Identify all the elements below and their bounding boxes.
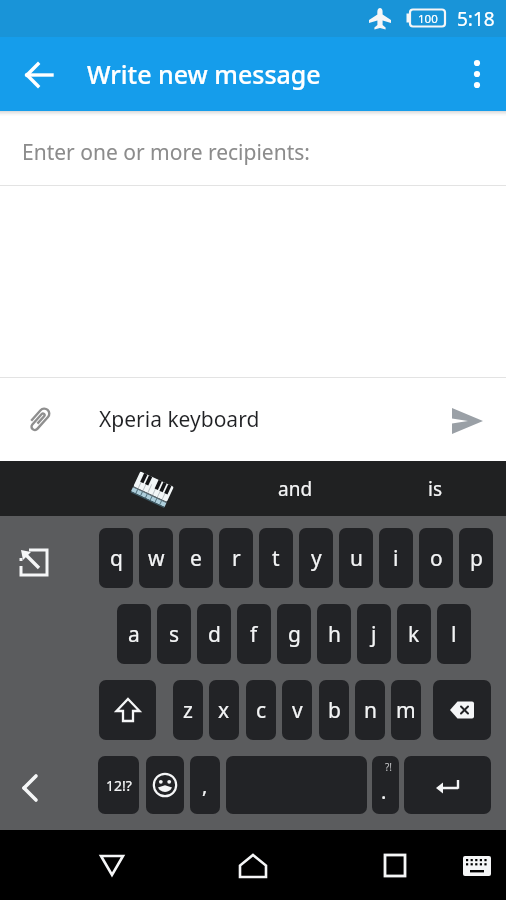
button[interactable]	[16, 52, 62, 98]
staticText: 5:18	[457, 6, 495, 32]
button[interactable]: q	[99, 528, 133, 588]
button[interactable]: h	[317, 604, 351, 664]
staticText: and	[278, 476, 313, 502]
staticText: 12!?	[106, 776, 132, 795]
staticText: i	[393, 544, 399, 573]
staticText: k	[408, 620, 420, 649]
button[interactable]: i	[379, 528, 413, 588]
button[interactable]: and	[255, 461, 335, 516]
button[interactable]: b	[319, 680, 349, 740]
button[interactable]	[99, 680, 156, 740]
staticText: d	[208, 620, 221, 649]
button[interactable]: m	[391, 680, 421, 740]
staticText: r	[232, 544, 241, 573]
button[interactable]	[18, 400, 60, 442]
staticText: f	[250, 620, 258, 649]
staticText: x	[218, 696, 230, 725]
staticText: n	[364, 696, 377, 725]
button[interactable]	[404, 756, 491, 814]
button[interactable]: z	[173, 680, 203, 740]
button[interactable]: f	[237, 604, 271, 664]
button[interactable]: v	[282, 680, 312, 740]
button[interactable]: is	[395, 461, 475, 516]
staticText: is	[428, 476, 443, 502]
button[interactable]: w	[139, 528, 173, 588]
button[interactable]	[88, 842, 136, 888]
button[interactable]: o	[419, 528, 453, 588]
button[interactable]: r	[219, 528, 253, 588]
button[interactable]	[438, 404, 494, 438]
staticText: j	[371, 620, 377, 649]
button[interactable]	[146, 756, 184, 814]
staticText: h	[328, 620, 341, 649]
button[interactable]: l	[437, 604, 471, 664]
staticText: b	[328, 696, 341, 725]
staticText: y	[311, 544, 322, 573]
staticText: o	[430, 544, 443, 573]
staticText: .	[381, 778, 387, 805]
staticText: m	[396, 696, 416, 725]
button[interactable]: j	[357, 604, 391, 664]
button[interactable]	[10, 539, 58, 587]
staticText: v	[292, 696, 303, 725]
staticText: t	[272, 544, 280, 573]
staticText: g	[288, 620, 301, 649]
staticText: u	[350, 544, 363, 573]
staticText: p	[470, 544, 483, 573]
button[interactable]: Enter one or more recipients:	[0, 111, 506, 193]
staticText: z	[183, 696, 193, 725]
button[interactable]	[433, 680, 491, 740]
button[interactable]: 12!?	[98, 756, 139, 814]
button[interactable]: e	[179, 528, 213, 588]
button[interactable]: n	[355, 680, 385, 740]
button[interactable]	[226, 756, 367, 814]
button[interactable]: s	[157, 604, 191, 664]
staticText: e	[190, 544, 202, 573]
button[interactable]	[132, 470, 172, 510]
staticText: Write new message	[87, 57, 321, 91]
button[interactable]: ?!	[372, 756, 399, 814]
staticText: q	[110, 544, 123, 573]
button[interactable]: a	[117, 604, 151, 664]
button[interactable]	[455, 846, 499, 886]
staticText: ?!	[385, 760, 393, 774]
button[interactable]	[371, 842, 419, 888]
staticText: 100	[418, 11, 438, 26]
button[interactable]: d	[197, 604, 231, 664]
staticText: Xperia keyboard	[99, 405, 260, 434]
staticText: ,	[202, 772, 208, 799]
staticText: Enter one or more recipients:	[22, 138, 310, 167]
button[interactable]: ,	[190, 756, 220, 814]
button[interactable]: t	[259, 528, 293, 588]
button[interactable]: u	[339, 528, 373, 588]
staticText: l	[451, 620, 457, 649]
button[interactable]	[458, 52, 498, 98]
staticText: c	[256, 696, 267, 725]
staticText: w	[148, 544, 165, 573]
button[interactable]: k	[397, 604, 431, 664]
button[interactable]: c	[246, 680, 276, 740]
button[interactable]: y	[299, 528, 333, 588]
button[interactable]	[8, 764, 50, 812]
button[interactable]: p	[459, 528, 493, 588]
button[interactable]	[229, 842, 277, 888]
button[interactable]: g	[277, 604, 311, 664]
staticText: s	[169, 620, 180, 649]
staticText: a	[128, 620, 140, 649]
button[interactable]: x	[209, 680, 239, 740]
